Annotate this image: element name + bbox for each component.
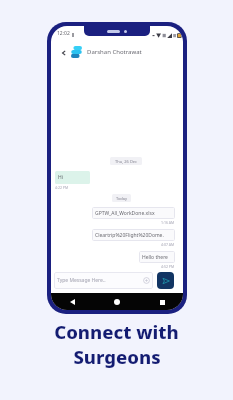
staticText: 12:02: [57, 30, 70, 37]
button[interactable]: Back: [67, 297, 77, 307]
staticText: GPTW_All_WorkDone.xlsx: [95, 210, 155, 217]
button[interactable]: Type Message Here..: [54, 272, 153, 289]
staticText: Darshan Chotrawat: [87, 48, 142, 56]
button[interactable]: Attach: [143, 277, 150, 284]
staticText: Hi: [58, 174, 63, 181]
button[interactable]: Recents: [157, 297, 167, 307]
staticText: 4:07 AM: [161, 242, 175, 247]
button[interactable]: Home: [112, 297, 122, 307]
button[interactable]: Back: [51, 42, 183, 62]
staticText: Hello there: [142, 254, 168, 261]
button[interactable]: Send: [157, 272, 174, 289]
button[interactable]: Hello there: [139, 251, 175, 263]
button[interactable]: Cleartrip%20Flight%20Dome.: [92, 229, 175, 241]
staticText: Today: [116, 196, 128, 201]
staticText: Cleartrip%20Flight%20Dome.: [95, 232, 164, 239]
staticText: 4:22 PM: [55, 185, 69, 190]
staticText: Thu, 26 Dec: [115, 159, 137, 164]
staticText: Type Message Here..: [57, 277, 106, 284]
button[interactable]: Back: [59, 48, 68, 57]
button[interactable]: GPTW_All_WorkDone.xlsx: [92, 207, 175, 219]
staticText: 1:16 AM: [161, 220, 175, 225]
staticText: 4:52 PM: [161, 264, 175, 269]
button[interactable]: Hi: [55, 171, 90, 184]
staticText: Surgeons: [73, 344, 161, 369]
staticText: Connect with: [54, 319, 179, 344]
